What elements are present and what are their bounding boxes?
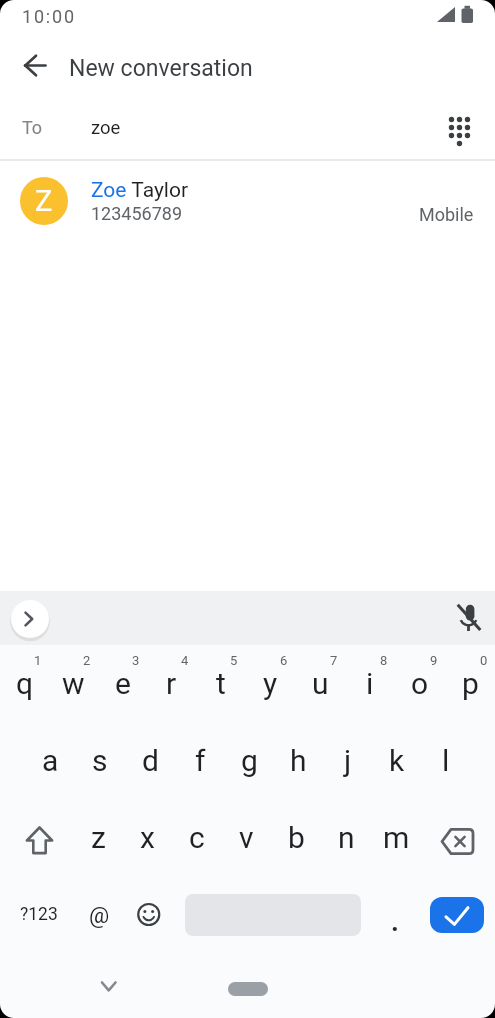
staticText: 5	[230, 653, 238, 668]
staticText: 7	[330, 653, 338, 668]
button[interactable]: k	[372, 722, 421, 799]
staticText: New conversation	[69, 55, 253, 82]
staticText: zoe	[91, 117, 121, 139]
staticText: n	[338, 820, 355, 855]
button[interactable]: o	[395, 645, 445, 722]
staticText: 1	[34, 653, 42, 668]
staticText: 4	[181, 653, 189, 668]
button[interactable]: s	[75, 722, 125, 799]
button[interactable]: j	[323, 722, 372, 799]
button[interactable]: h	[274, 722, 323, 799]
button[interactable]	[124, 876, 174, 953]
staticText: u	[312, 666, 329, 701]
button[interactable]: e	[98, 645, 147, 722]
button[interactable]: d	[125, 722, 175, 799]
staticText: l	[442, 743, 450, 778]
button[interactable]	[11, 600, 49, 638]
staticText: 0	[480, 653, 488, 668]
staticText: b	[288, 820, 305, 855]
staticText: y	[263, 666, 278, 701]
button[interactable]: t	[196, 645, 245, 722]
staticText: c	[189, 820, 205, 855]
staticText: g	[241, 743, 258, 778]
staticText: 10:00	[22, 6, 76, 27]
button[interactable]	[0, 799, 74, 876]
button[interactable]: m	[371, 799, 421, 876]
staticText: Z	[35, 184, 53, 218]
button[interactable]: b	[271, 799, 321, 876]
button[interactable]	[421, 799, 495, 876]
button[interactable]: ?123	[0, 876, 74, 953]
staticText: 2	[83, 653, 91, 668]
button[interactable]: q	[0, 645, 49, 722]
button[interactable]: y	[245, 645, 295, 722]
staticText: 8	[380, 653, 388, 668]
staticText: @	[89, 902, 110, 928]
staticText: t	[216, 666, 226, 701]
button[interactable]	[451, 600, 487, 636]
staticText: r	[166, 666, 177, 701]
button[interactable]	[430, 897, 484, 933]
staticText: o	[411, 666, 429, 701]
staticText: e	[115, 666, 131, 701]
button[interactable]: f	[175, 722, 225, 799]
staticText: j	[344, 743, 352, 778]
button[interactable]: w	[49, 645, 98, 722]
staticText: d	[142, 743, 159, 778]
staticText: m	[383, 820, 410, 855]
button[interactable]: p	[445, 645, 495, 722]
staticText: ?123	[20, 904, 58, 925]
staticText: 6	[280, 653, 288, 668]
button[interactable]: c	[172, 799, 221, 876]
button[interactable]	[228, 982, 268, 996]
staticText: s	[92, 743, 108, 778]
staticText: To	[22, 117, 43, 138]
staticText: p	[462, 666, 479, 701]
staticText: x	[140, 820, 155, 855]
button[interactable]	[0, 40, 60, 96]
staticText: a	[42, 743, 59, 778]
staticText: k	[389, 743, 405, 778]
button[interactable]: g	[225, 722, 274, 799]
staticText: Zoe Taylor	[91, 178, 189, 203]
button[interactable]: i	[345, 645, 395, 722]
button[interactable]: r	[147, 645, 196, 722]
staticText: 9	[430, 653, 438, 668]
staticText: h	[290, 743, 307, 778]
staticText: 3	[132, 653, 140, 668]
staticText: f	[195, 743, 206, 778]
button[interactable]: a	[25, 722, 75, 799]
staticText: 123456789	[91, 203, 183, 224]
button[interactable]: l	[421, 722, 470, 799]
button[interactable]: u	[295, 645, 345, 722]
button[interactable]: z	[74, 799, 123, 876]
staticText: z	[91, 820, 106, 855]
button[interactable]	[372, 876, 422, 953]
button[interactable]: @	[74, 876, 124, 953]
staticText: v	[239, 820, 254, 855]
button[interactable]: n	[321, 799, 371, 876]
button[interactable]: Z	[0, 161, 495, 237]
staticText: Mobile	[419, 204, 474, 225]
button[interactable]: v	[221, 799, 271, 876]
staticText: q	[16, 666, 34, 701]
button[interactable]: x	[123, 799, 172, 876]
button[interactable]	[435, 104, 483, 152]
staticText: i	[366, 666, 374, 701]
staticText: w	[62, 666, 85, 701]
